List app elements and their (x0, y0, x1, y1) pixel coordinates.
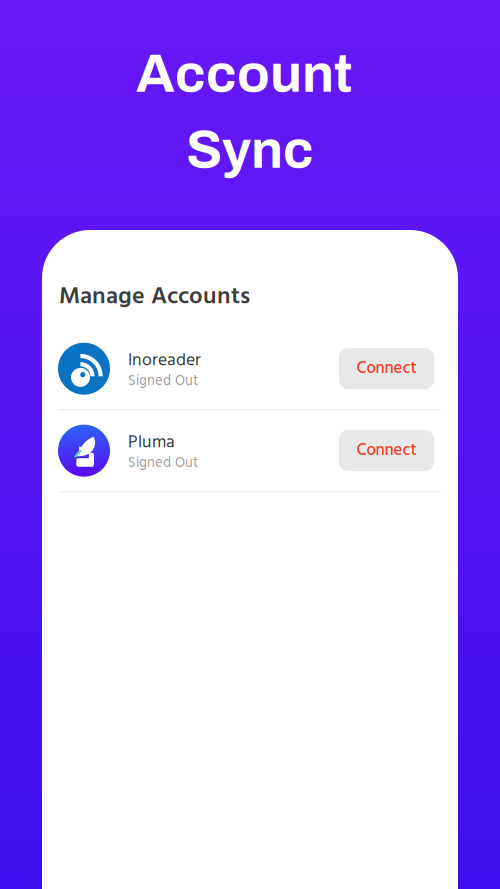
staticText: Signed Out (128, 452, 198, 475)
staticText: Connect (356, 355, 416, 382)
staticText: Connect (356, 437, 416, 464)
button[interactable]: Connect (339, 348, 434, 389)
staticText: Inoreader (128, 347, 201, 375)
staticText: Sync (186, 121, 314, 179)
staticText: Account (136, 45, 352, 103)
staticText: Pluma (128, 429, 175, 457)
staticText: Manage Accounts (59, 278, 250, 316)
button[interactable]: Connect (339, 430, 434, 471)
staticText: Signed Out (128, 370, 198, 393)
